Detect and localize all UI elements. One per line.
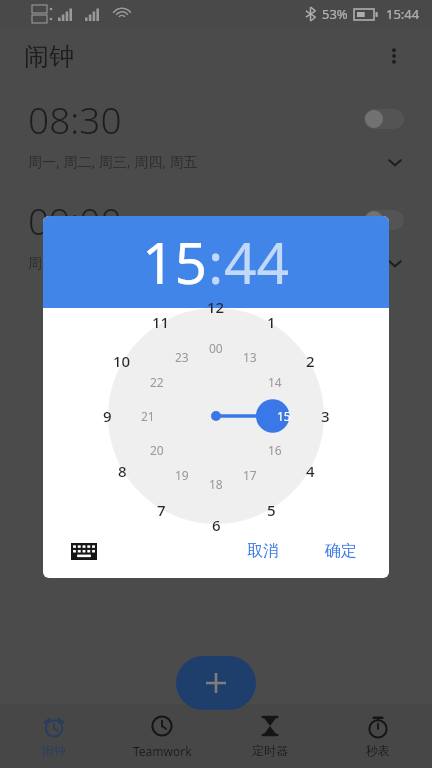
staticText: 20: [150, 442, 164, 458]
button[interactable]: Toggle alarm: [364, 109, 404, 129]
button[interactable]: 取消: [239, 533, 287, 569]
staticText: 15: [142, 223, 208, 301]
staticText: 15: [277, 408, 291, 424]
staticText: 5: [267, 500, 276, 520]
staticText: 2: [306, 351, 315, 371]
staticText: 09:00: [28, 195, 122, 245]
staticText: 3: [321, 406, 330, 426]
button[interactable]: 秒表: [324, 704, 432, 768]
staticText: 16: [268, 442, 282, 458]
staticText: 00: [209, 340, 223, 356]
button[interactable]: 确定: [317, 533, 365, 569]
staticText: 11: [152, 312, 170, 332]
staticText: 周一, 周二, 周三, 周四, 周五: [28, 152, 198, 171]
staticText: 12: [207, 297, 225, 317]
button[interactable]: 定时器: [216, 704, 324, 768]
staticText: 22: [150, 374, 164, 390]
staticText: 10: [113, 351, 131, 371]
staticText: 53%: [322, 5, 348, 23]
staticText: 23: [175, 349, 189, 365]
button[interactable]: 08:30: [0, 94, 432, 195]
staticText: Teamwork: [133, 743, 192, 759]
button[interactable]: Switch to keyboard input: [71, 536, 105, 566]
staticText: 闹钟: [24, 41, 74, 72]
staticText: 17: [243, 467, 257, 483]
staticText: 21: [141, 408, 155, 424]
button[interactable]: 09:00: [0, 195, 432, 296]
staticText: 44: [224, 223, 290, 301]
staticText: 19: [175, 467, 189, 483]
staticText: 15:44: [386, 5, 420, 23]
staticText: 确定: [325, 541, 357, 561]
staticText: 取消: [247, 541, 279, 561]
staticText: 7: [157, 500, 166, 520]
staticText: 1: [267, 312, 276, 332]
staticText: :: [208, 223, 224, 301]
button[interactable]: Toggle alarm: [364, 210, 404, 230]
button[interactable]: 闹钟: [0, 704, 108, 768]
staticText: 定时器: [252, 743, 288, 758]
staticText: 6: [212, 515, 221, 535]
button[interactable]: Teamwork: [108, 704, 216, 768]
staticText: 4: [306, 461, 315, 481]
staticText: 08:30: [28, 94, 122, 144]
staticText: 闹钟: [42, 743, 66, 758]
staticText: 13: [243, 349, 257, 365]
button[interactable]: Add alarm: [176, 656, 256, 710]
staticText: 秒表: [366, 743, 390, 758]
staticText: 14: [268, 374, 282, 390]
staticText: 8: [118, 461, 127, 481]
staticText: 18: [209, 476, 223, 492]
button[interactable]: More options: [374, 36, 414, 76]
staticText: 9: [103, 406, 112, 426]
staticText: 周一, 周二: [28, 253, 92, 272]
